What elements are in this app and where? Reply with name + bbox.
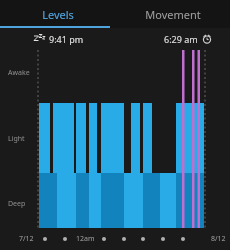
staticText: 12am	[76, 234, 95, 244]
staticText: Levels	[42, 7, 74, 22]
button[interactable]: Movement	[115, 0, 230, 28]
staticText: 8/12	[211, 234, 226, 244]
button[interactable]: Alarm	[202, 34, 212, 44]
staticText: Deep	[8, 199, 26, 209]
button[interactable]: Levels	[0, 0, 115, 28]
staticText: 6:29 am	[164, 33, 198, 45]
staticText: Movement	[145, 7, 201, 22]
staticText: Awake	[8, 68, 30, 78]
staticText: Light	[8, 134, 25, 144]
staticText: 7/12	[19, 234, 34, 244]
staticText: 9:41 pm	[49, 33, 84, 45]
